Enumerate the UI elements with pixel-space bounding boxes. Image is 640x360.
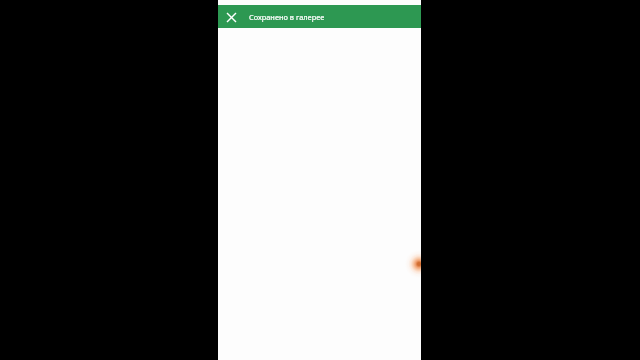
button[interactable]: Record xyxy=(405,250,421,278)
button[interactable]: Close xyxy=(220,6,242,29)
staticText: Сохранено в галерее xyxy=(249,12,325,22)
